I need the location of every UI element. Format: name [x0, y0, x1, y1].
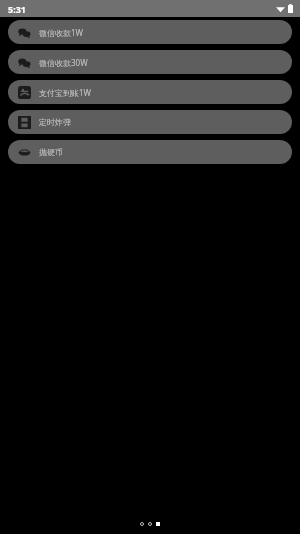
button[interactable]: 定时炸弹	[8, 110, 292, 134]
button[interactable]: 微信收款30W	[8, 50, 292, 74]
staticText: 微信收款30W	[39, 57, 88, 68]
button[interactable]: 抛硬币	[8, 140, 292, 164]
staticText: 支付宝到账1W	[39, 87, 92, 98]
staticText: 抛硬币	[39, 147, 63, 157]
staticText: 5:31	[8, 3, 26, 15]
staticText: 微信收款1W	[39, 27, 84, 38]
staticText: 定时炸弹	[39, 117, 71, 127]
button[interactable]: 支付宝到账1W	[8, 80, 292, 104]
button[interactable]: 微信收款1W	[8, 20, 292, 44]
